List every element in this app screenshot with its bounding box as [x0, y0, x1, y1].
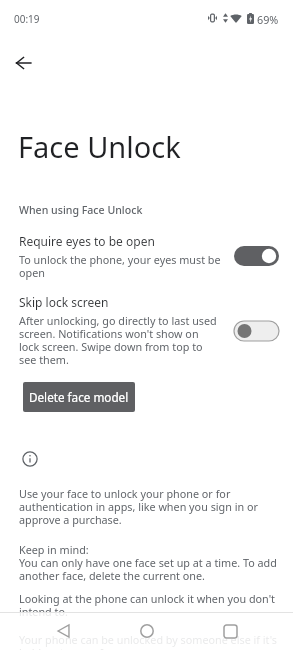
- button[interactable]: Back: [43, 612, 83, 650]
- button[interactable]: Recent apps: [210, 612, 250, 650]
- button[interactable]: Require eyes to be open: [0, 228, 293, 280]
- staticText: 00:19: [14, 12, 40, 26]
- staticText: Delete face model: [29, 389, 129, 405]
- staticText: Skip lock screen: [19, 294, 109, 310]
- staticText: Your phone can be unlocked by someone el…: [19, 632, 281, 650]
- staticText: Require eyes to be open: [19, 233, 155, 249]
- staticText: Face Unlock: [18, 127, 181, 166]
- button[interactable]: Off: [234, 321, 279, 341]
- staticText: Looking at the phone can unlock it when …: [19, 591, 281, 619]
- staticText: When using Face Unlock: [19, 203, 143, 217]
- staticText: Use your face to unlock your phone or fo…: [19, 486, 281, 527]
- button[interactable]: Delete face model: [23, 382, 135, 412]
- button[interactable]: On: [234, 246, 279, 266]
- staticText: To unlock the phone, your eyes must be o…: [19, 252, 225, 280]
- button[interactable]: Navigate up: [9, 49, 37, 77]
- staticText: 69%: [257, 12, 279, 24]
- staticText: After unlocking, go directly to last use…: [19, 313, 219, 367]
- button[interactable]: Skip lock screen: [0, 290, 293, 368]
- button[interactable]: Home: [127, 612, 167, 650]
- staticText: Keep in mind: You can only have one face…: [19, 542, 283, 583]
